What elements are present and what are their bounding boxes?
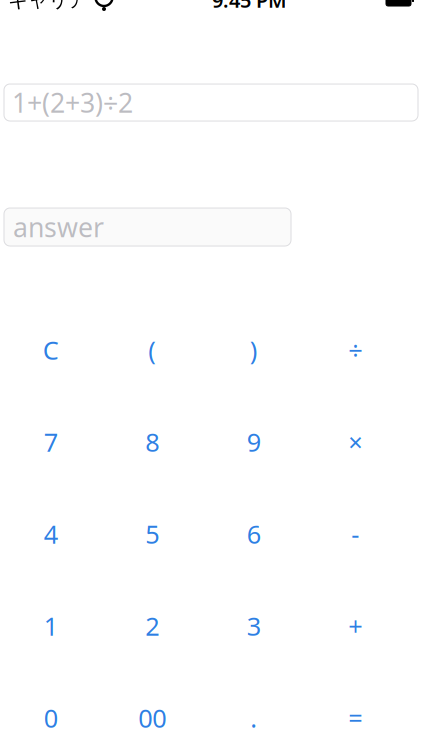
button[interactable]: ÷: [304, 304, 406, 396]
staticText: (: [148, 333, 156, 367]
staticText: 00: [138, 701, 166, 735]
staticText: 8: [145, 425, 159, 459]
button[interactable]: 2: [101, 580, 203, 672]
button[interactable]: 4: [0, 488, 101, 580]
staticText: answer: [13, 209, 104, 245]
staticText: 6: [247, 517, 261, 551]
staticText: -: [351, 517, 359, 551]
button[interactable]: 1: [0, 580, 101, 672]
button[interactable]: ): [203, 304, 304, 396]
staticText: .: [250, 701, 257, 735]
button[interactable]: 0: [0, 672, 101, 750]
staticText: 1: [44, 609, 58, 643]
staticText: =: [348, 701, 362, 735]
button[interactable]: 7: [0, 396, 101, 488]
staticText: 1+(2+3)÷2: [12, 85, 133, 120]
staticText: 2: [145, 609, 159, 643]
button[interactable]: 8: [101, 396, 203, 488]
button[interactable]: -: [304, 488, 406, 580]
staticText: 7: [44, 425, 58, 459]
staticText: 4: [44, 517, 58, 551]
button[interactable]: 9: [203, 396, 304, 488]
staticText: 9: [247, 425, 261, 459]
button[interactable]: 6: [203, 488, 304, 580]
staticText: 3: [247, 609, 261, 643]
staticText: ×: [348, 425, 362, 459]
button[interactable]: +: [304, 580, 406, 672]
button[interactable]: =: [304, 672, 406, 750]
button[interactable]: 00: [101, 672, 203, 750]
button[interactable]: C: [0, 304, 101, 396]
button[interactable]: (: [101, 304, 203, 396]
button[interactable]: 3: [203, 580, 304, 672]
staticText: 0: [44, 701, 58, 735]
button[interactable]: .: [203, 672, 304, 750]
staticText: 5: [145, 517, 159, 551]
staticText: キャリア: [8, 0, 88, 12]
staticText: +: [348, 609, 362, 643]
button[interactable]: ×: [304, 396, 406, 488]
button[interactable]: 5: [101, 488, 203, 580]
staticText: 9:45 PM: [212, 0, 287, 13]
staticText: ): [250, 333, 258, 367]
staticText: C: [43, 333, 59, 367]
staticText: ÷: [348, 333, 362, 367]
